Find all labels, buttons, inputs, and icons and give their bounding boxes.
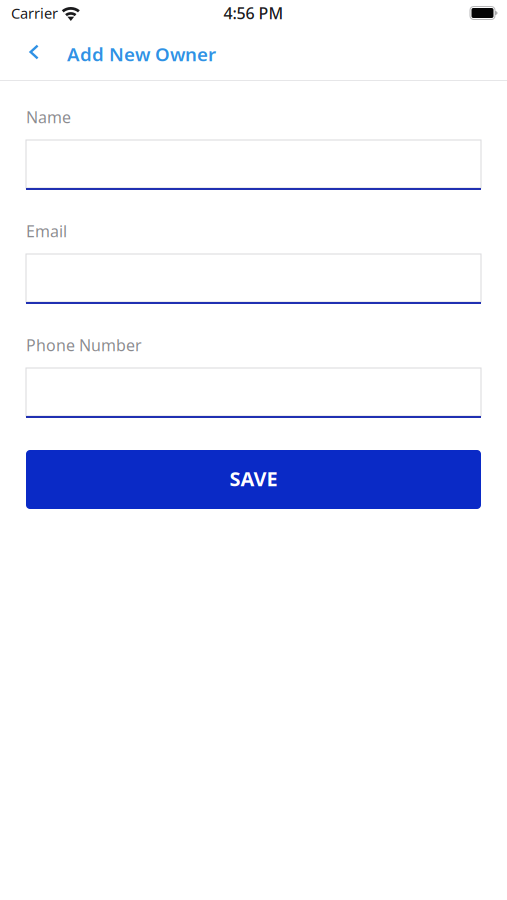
button[interactable]: Phone Number <box>26 368 481 418</box>
staticText: Add New Owner <box>67 42 216 66</box>
staticText: Carrier <box>11 3 58 23</box>
staticText: SAVE <box>229 465 277 492</box>
staticText: Email <box>26 220 67 242</box>
button[interactable]: Email <box>26 254 481 304</box>
button[interactable]: SAVE <box>26 450 481 509</box>
staticText: Phone Number <box>26 334 142 356</box>
button[interactable]: Back <box>21 35 47 71</box>
staticText: Name <box>26 106 71 128</box>
staticText: 4:56 PM <box>223 2 283 24</box>
button[interactable]: Name <box>26 140 481 190</box>
